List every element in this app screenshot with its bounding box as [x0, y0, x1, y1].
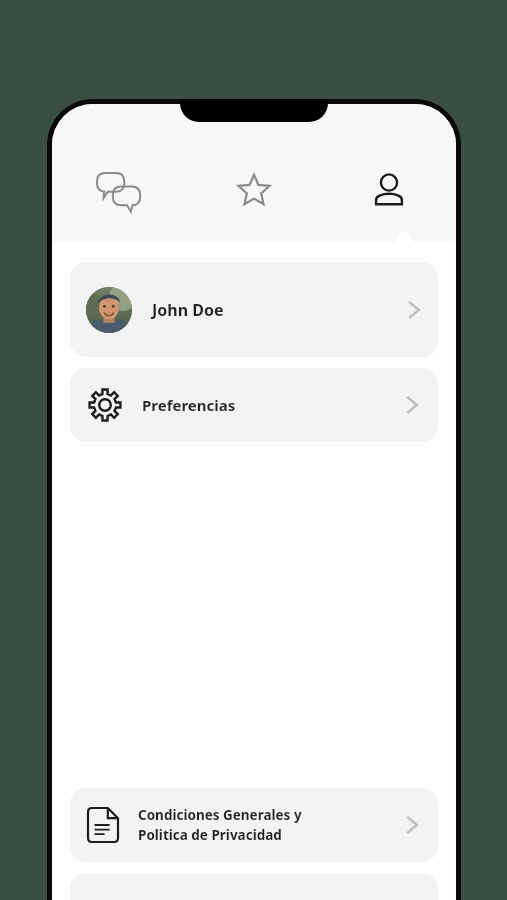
button[interactable]: Chats — [52, 163, 186, 217]
button[interactable]: Preferencias — [70, 368, 438, 442]
staticText: Preferencias — [142, 395, 236, 415]
button[interactable]: Profile — [321, 163, 456, 217]
staticText: Condiciones Generales y — [138, 806, 302, 824]
staticText: John Doe — [152, 299, 224, 321]
button[interactable]: Favorites — [186, 163, 321, 217]
button[interactable]: Condiciones Generales y — [70, 788, 438, 862]
button[interactable]: John Doe — [70, 262, 438, 357]
staticText: Politica de Privacidad — [138, 826, 282, 844]
